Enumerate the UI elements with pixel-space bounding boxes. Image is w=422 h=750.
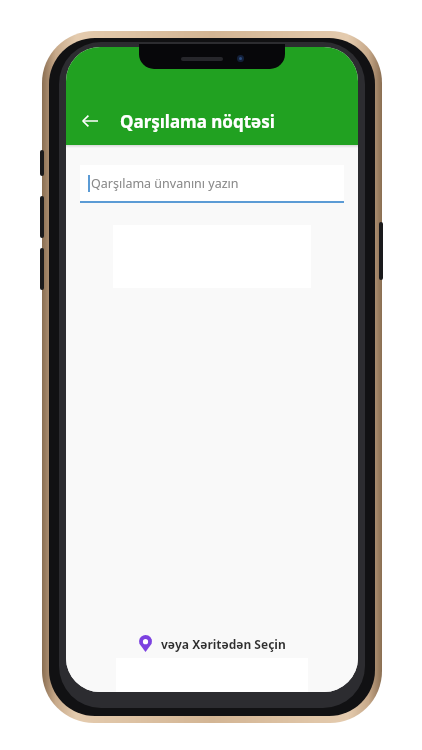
staticText: vəya Xəritədən Seçin <box>161 636 286 652</box>
staticText: Qarşılama nöqtəsi <box>120 110 275 133</box>
button[interactable]: Qarşılama ünvanını yazın <box>80 165 344 203</box>
button[interactable]: Back <box>70 101 110 141</box>
staticText: Qarşılama ünvanını yazın <box>91 175 239 192</box>
button[interactable]: vəya Xəritədən Seçin <box>139 635 286 652</box>
